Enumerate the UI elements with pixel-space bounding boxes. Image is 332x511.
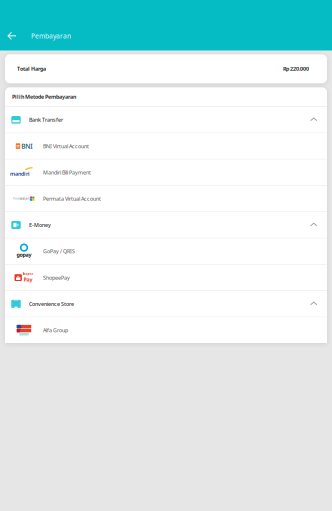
staticText: BNI [21, 142, 32, 151]
staticText: gopay [16, 251, 31, 258]
staticText: Pilih Metode Pembayaran [12, 93, 76, 100]
button[interactable]: mandiri [5, 160, 327, 185]
staticText: Alfa Group [43, 327, 68, 334]
button[interactable]: E-Money [5, 212, 327, 238]
staticText: ShopeePay [43, 274, 70, 281]
button[interactable]: Back [4, 24, 20, 48]
staticText: Pay [23, 276, 32, 283]
staticText: Pembayaran [31, 32, 71, 40]
staticText: mandiri [10, 170, 30, 177]
button[interactable]: PermataBank [5, 186, 327, 211]
button[interactable]: BNI [5, 133, 327, 159]
staticText: Bank Transfer [29, 116, 63, 123]
button[interactable]: Bank Transfer [5, 107, 327, 133]
button[interactable]: Convenience Store [5, 291, 327, 317]
staticText: Shopee [22, 272, 33, 276]
staticText: E-Money [29, 221, 51, 229]
staticText: Mandiri Bill Payment [43, 169, 91, 176]
staticText: PermataBank [13, 197, 29, 200]
staticText: GoPay / QRIS [43, 248, 75, 255]
button[interactable]: Alfa Group [5, 317, 327, 343]
button[interactable]: gopay [5, 238, 327, 264]
staticText: Permata Virtual Account [43, 195, 101, 202]
staticText: BNI Virtual Account [43, 143, 89, 150]
button[interactable]: Shopee [5, 265, 327, 290]
staticText: Convenience Store [29, 300, 74, 307]
staticText: Total Harga [17, 65, 46, 72]
staticText: Rp 220.000 [283, 65, 309, 72]
